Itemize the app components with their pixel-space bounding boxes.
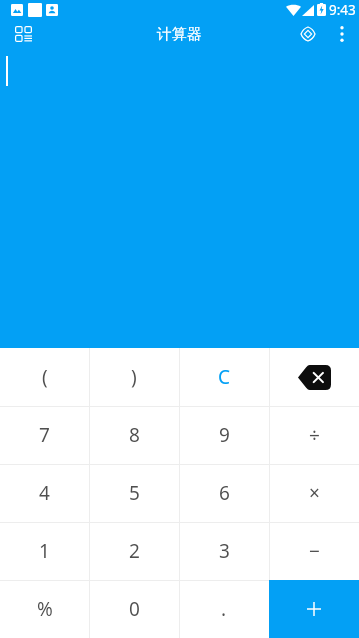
staticText: 计算器 bbox=[157, 25, 202, 44]
staticText: 9 bbox=[219, 422, 230, 448]
button[interactable]: 6 bbox=[179, 464, 269, 522]
button[interactable]: 3 bbox=[179, 522, 269, 580]
button[interactable]: . bbox=[179, 580, 269, 638]
staticText: 1 bbox=[39, 538, 50, 564]
button[interactable]: ( bbox=[0, 348, 89, 406]
staticText: 5 bbox=[129, 480, 140, 506]
button[interactable]: Scientific mode bbox=[283, 15, 321, 53]
staticText: ) bbox=[131, 364, 137, 390]
button[interactable]: × bbox=[269, 464, 359, 522]
button[interactable]: 8 bbox=[89, 406, 179, 464]
button[interactable]: % bbox=[0, 580, 89, 638]
staticText: ÷ bbox=[309, 422, 320, 448]
staticText: 2 bbox=[129, 538, 140, 564]
button[interactable]: Apps bbox=[4, 15, 42, 53]
staticText: 6 bbox=[219, 480, 230, 506]
staticText: C bbox=[218, 364, 231, 390]
staticText: ( bbox=[42, 364, 48, 390]
staticText: 7 bbox=[39, 422, 50, 448]
staticText: × bbox=[309, 480, 320, 506]
staticText: − bbox=[309, 538, 320, 564]
staticText: . bbox=[221, 596, 227, 622]
staticText: 8 bbox=[129, 422, 140, 448]
staticText: % bbox=[37, 596, 53, 622]
staticText: 3 bbox=[219, 538, 230, 564]
button[interactable]: Delete bbox=[269, 348, 359, 406]
button[interactable]: ) bbox=[89, 348, 179, 406]
button[interactable]: Plus bbox=[269, 580, 359, 638]
button[interactable]: 2 bbox=[89, 522, 179, 580]
staticText: 0 bbox=[129, 596, 140, 622]
button[interactable]: 1 bbox=[0, 522, 89, 580]
button[interactable]: 5 bbox=[89, 464, 179, 522]
button[interactable]: − bbox=[269, 522, 359, 580]
button[interactable]: 9 bbox=[179, 406, 269, 464]
staticText: 4 bbox=[39, 480, 50, 506]
button[interactable]: C bbox=[179, 348, 269, 406]
staticText: 9:43 bbox=[329, 1, 356, 19]
button[interactable]: 7 bbox=[0, 406, 89, 464]
button[interactable]: ÷ bbox=[269, 406, 359, 464]
button[interactable]: 4 bbox=[0, 464, 89, 522]
button[interactable]: More options bbox=[323, 15, 359, 53]
button[interactable]: 0 bbox=[89, 580, 179, 638]
